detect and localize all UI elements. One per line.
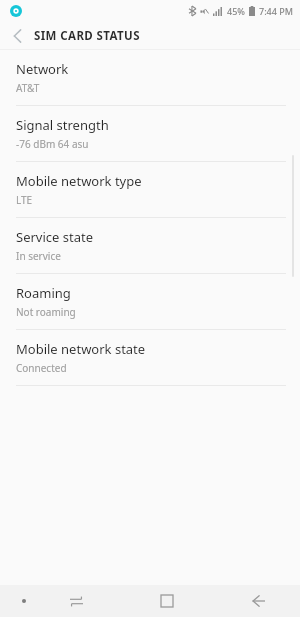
staticText: Mobile network type [16, 172, 142, 190]
button[interactable]: Mobile network state [0, 330, 300, 386]
button[interactable]: Mobile network type [0, 162, 300, 218]
staticText: In service [16, 249, 61, 263]
staticText: AT&T [16, 81, 40, 95]
button[interactable]: Recents [139, 585, 195, 617]
button[interactable]: Back [0, 22, 34, 50]
staticText: Mobile network state [16, 340, 146, 358]
button[interactable]: Signal strength [0, 106, 300, 162]
button[interactable]: Switch apps [48, 585, 104, 617]
button[interactable]: More options [0, 585, 48, 617]
staticText: Roaming [16, 284, 71, 302]
staticText: LTE [16, 193, 33, 207]
staticText: Connected [16, 361, 67, 375]
button[interactable]: Back [230, 585, 286, 617]
staticText: Signal strength [16, 116, 109, 134]
button[interactable]: Roaming [0, 274, 300, 330]
staticText: Not roaming [16, 305, 76, 319]
staticText: 45% [227, 5, 245, 17]
button[interactable]: Network [0, 50, 300, 106]
staticText: Network [16, 60, 69, 78]
staticText: Service state [16, 228, 93, 246]
button[interactable]: Service state [0, 218, 300, 274]
staticText: 7:44 PM [259, 5, 293, 17]
staticText: -76 dBm 64 asu [16, 137, 89, 151]
staticText: SIM CARD STATUS [34, 28, 140, 44]
